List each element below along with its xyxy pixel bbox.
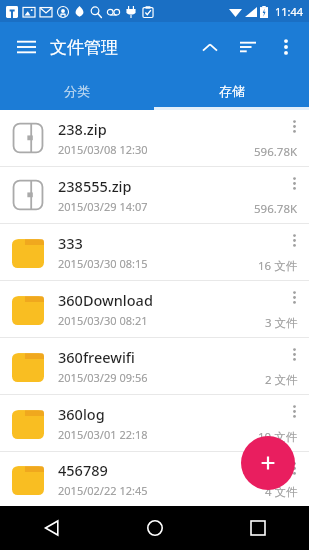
staticText: 333 [58,233,83,253]
button[interactable]: Item options [281,227,307,253]
button[interactable]: More options [267,28,305,66]
staticText: 10 文件 [258,429,298,445]
button[interactable]: 238555.zip [0,167,309,223]
staticText: 360freewifi [58,347,135,367]
button[interactable]: Item options [281,398,307,424]
staticText: 2015/03/30 08:15 [58,256,148,271]
staticText: 596.78K [254,144,298,160]
staticText: 4 文件 [265,484,298,500]
staticText: 2 文件 [265,372,298,388]
staticText: 2015/03/29 14:07 [58,199,148,214]
button[interactable]: 360Download [0,281,309,337]
staticText: 2015/03/01 22:18 [58,427,148,442]
button[interactable]: 360freewifi [0,338,309,394]
button[interactable]: 分类 [0,72,154,110]
button[interactable]: 456789 [0,452,309,506]
staticText: 3 文件 [265,315,298,331]
button[interactable]: 333 [0,224,309,280]
button[interactable]: 238.zip [0,110,309,166]
staticText: 2015/03/08 12:30 [58,142,148,157]
staticText: 2015/03/29 09:56 [58,370,148,385]
staticText: 596.78K [254,201,298,217]
staticText: 2015/02/22 12:45 [58,483,148,498]
button[interactable]: Recents [206,506,309,550]
staticText: 238555.zip [58,176,132,196]
staticText: 360Download [58,290,153,310]
button[interactable]: Add [241,436,295,490]
button[interactable]: Menu [7,28,45,66]
button[interactable]: 存储 [154,72,309,110]
staticText: 16 文件 [258,258,298,274]
staticText: 2015/03/30 08:21 [58,313,148,328]
staticText: 456789 [58,460,108,480]
button[interactable]: Collapse [191,28,229,66]
button[interactable]: Item options [281,284,307,310]
button[interactable]: Item options [281,455,307,481]
staticText: 文件管理 [50,37,118,58]
button[interactable]: 360log [0,395,309,451]
staticText: 存储 [219,83,245,99]
button[interactable]: Item options [281,341,307,367]
button[interactable]: Item options [281,113,307,139]
button[interactable]: Back [0,506,103,550]
button[interactable]: Item options [281,170,307,196]
staticText: 238.zip [58,119,107,139]
staticText: 360log [58,404,105,424]
button[interactable]: Home [103,506,206,550]
staticText: 分类 [64,83,90,99]
button[interactable]: Sort [229,28,267,66]
staticText: 11:44 [275,4,304,19]
